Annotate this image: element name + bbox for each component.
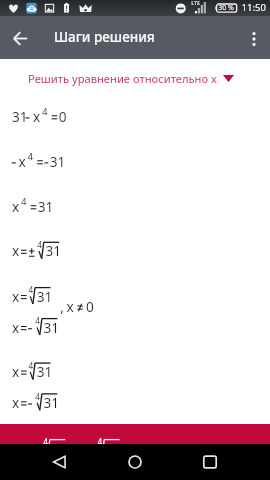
- button[interactable]: [0, 424, 270, 444]
- button[interactable]: Решить уравнение относительно x: [0, 67, 234, 90]
- staticText: Решить уравнение относительно x: [28, 71, 217, 86]
- button[interactable]: More options: [230, 16, 270, 59]
- button[interactable]: Recents: [186, 444, 234, 480]
- button[interactable]: Back: [36, 444, 84, 480]
- button[interactable]: Back: [1, 16, 41, 59]
- button[interactable]: Home: [111, 444, 159, 480]
- staticText: Шаги решения: [54, 28, 155, 46]
